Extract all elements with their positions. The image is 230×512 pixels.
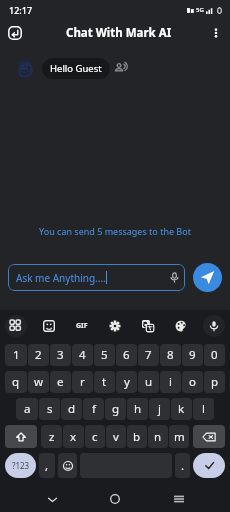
button[interactable]: 2 xyxy=(28,344,49,366)
button[interactable]: 8 xyxy=(160,344,181,366)
button[interactable]: Ask me Anything.... xyxy=(8,264,185,291)
staticText: 6 xyxy=(123,347,130,363)
button[interactable]: Recent apps xyxy=(167,487,191,511)
staticText: 1 xyxy=(13,347,20,363)
button[interactable]: 5 xyxy=(94,344,115,366)
button[interactable]: d xyxy=(61,398,82,420)
button[interactable]: Stickers xyxy=(38,315,60,337)
staticText: l xyxy=(202,401,205,417)
button[interactable]: u xyxy=(138,371,159,393)
staticText: Chat With Mark AI xyxy=(66,25,172,41)
staticText: AI xyxy=(21,63,29,72)
button[interactable]: Voice input xyxy=(203,315,225,337)
staticText: u xyxy=(145,374,153,390)
button[interactable]: Hello Guest xyxy=(42,58,110,79)
button[interactable]: Settings xyxy=(104,315,126,337)
button[interactable]: v xyxy=(106,425,126,448)
button[interactable]: t xyxy=(94,371,115,393)
button[interactable]: x xyxy=(63,425,84,448)
button[interactable]: j xyxy=(149,398,170,420)
button[interactable]: l xyxy=(193,398,214,420)
staticText: . xyxy=(181,458,185,474)
staticText: 8 xyxy=(167,347,174,363)
staticText: t xyxy=(102,374,107,390)
button[interactable]: Backspace xyxy=(193,425,225,448)
button[interactable]: a xyxy=(16,398,38,420)
button[interactable]: Translate xyxy=(137,315,159,337)
button[interactable]: Send message xyxy=(193,263,222,292)
button[interactable]: r xyxy=(72,371,93,393)
button[interactable]: c xyxy=(85,425,105,448)
staticText: 0 xyxy=(211,347,218,363)
button[interactable]: f xyxy=(83,398,104,420)
button[interactable]: Read aloud xyxy=(114,60,130,76)
staticText: f xyxy=(92,401,96,417)
button[interactable]: 7 xyxy=(138,344,159,366)
staticText: 3 xyxy=(57,347,64,363)
staticText: q xyxy=(12,374,20,390)
button[interactable]: e xyxy=(50,371,71,393)
staticText: k xyxy=(178,401,185,417)
button[interactable]: k xyxy=(171,398,192,420)
button[interactable]: Hide keyboard xyxy=(40,487,64,511)
staticText: ?123 xyxy=(12,460,30,471)
button[interactable]: z xyxy=(41,425,62,448)
staticText: You can send 5 messages to the Bot xyxy=(39,225,191,237)
staticText: e xyxy=(57,374,64,390)
staticText: a xyxy=(24,401,31,417)
staticText: n xyxy=(154,429,162,445)
button[interactable]: . xyxy=(175,453,190,478)
button[interactable]: 1 xyxy=(5,344,27,366)
button[interactable]: s xyxy=(39,398,60,420)
staticText: w xyxy=(34,374,44,390)
staticText: r xyxy=(80,374,85,390)
staticText: d xyxy=(68,401,76,417)
staticText: Ask me Anything.... xyxy=(16,271,106,285)
staticText: m xyxy=(174,429,185,445)
staticText: Hello Guest xyxy=(50,62,102,75)
button[interactable]: w xyxy=(28,371,49,393)
staticText: c xyxy=(92,429,98,445)
button[interactable]: More options xyxy=(205,22,227,44)
staticText: g xyxy=(112,401,120,417)
button[interactable]: g xyxy=(105,398,126,420)
button[interactable]: y xyxy=(116,371,137,393)
staticText: o xyxy=(189,374,196,390)
staticText: b xyxy=(133,429,141,445)
staticText: 12:17 xyxy=(9,4,33,16)
staticText: 7 xyxy=(145,347,152,363)
staticText: 2 xyxy=(35,347,42,363)
button[interactable]: h xyxy=(127,398,148,420)
button[interactable]: GIF xyxy=(71,315,93,337)
button[interactable]: 6 xyxy=(116,344,137,366)
button[interactable]: Apps xyxy=(5,315,27,337)
staticText: p xyxy=(211,374,219,390)
button[interactable]: 3 xyxy=(50,344,71,366)
button[interactable]: ?123 xyxy=(5,453,36,478)
button[interactable]: m xyxy=(169,425,189,448)
button[interactable]: Themes xyxy=(170,315,192,337)
button[interactable]: Shift xyxy=(5,425,37,448)
staticText: 5 xyxy=(101,347,108,363)
staticText: j xyxy=(158,401,161,417)
button[interactable]: n xyxy=(148,425,168,448)
button[interactable]: i xyxy=(160,371,181,393)
staticText: y xyxy=(124,374,130,390)
staticText: h xyxy=(134,401,142,417)
button[interactable]: Exit chat xyxy=(4,22,26,44)
button[interactable]: Emoji xyxy=(58,453,77,478)
button[interactable]: o xyxy=(182,371,203,393)
button[interactable]: Enter xyxy=(193,453,225,478)
staticText: s xyxy=(47,401,53,417)
staticText: x xyxy=(70,429,77,445)
button[interactable]: p xyxy=(204,371,225,393)
staticText: i xyxy=(169,374,172,390)
button[interactable]: 0 xyxy=(204,344,225,366)
button[interactable]: Home xyxy=(103,487,127,511)
button[interactable]: , xyxy=(39,453,55,478)
button[interactable]: b xyxy=(127,425,147,448)
button[interactable]: 4 xyxy=(72,344,93,366)
button[interactable]: 9 xyxy=(182,344,203,366)
button[interactable]: q xyxy=(5,371,27,393)
